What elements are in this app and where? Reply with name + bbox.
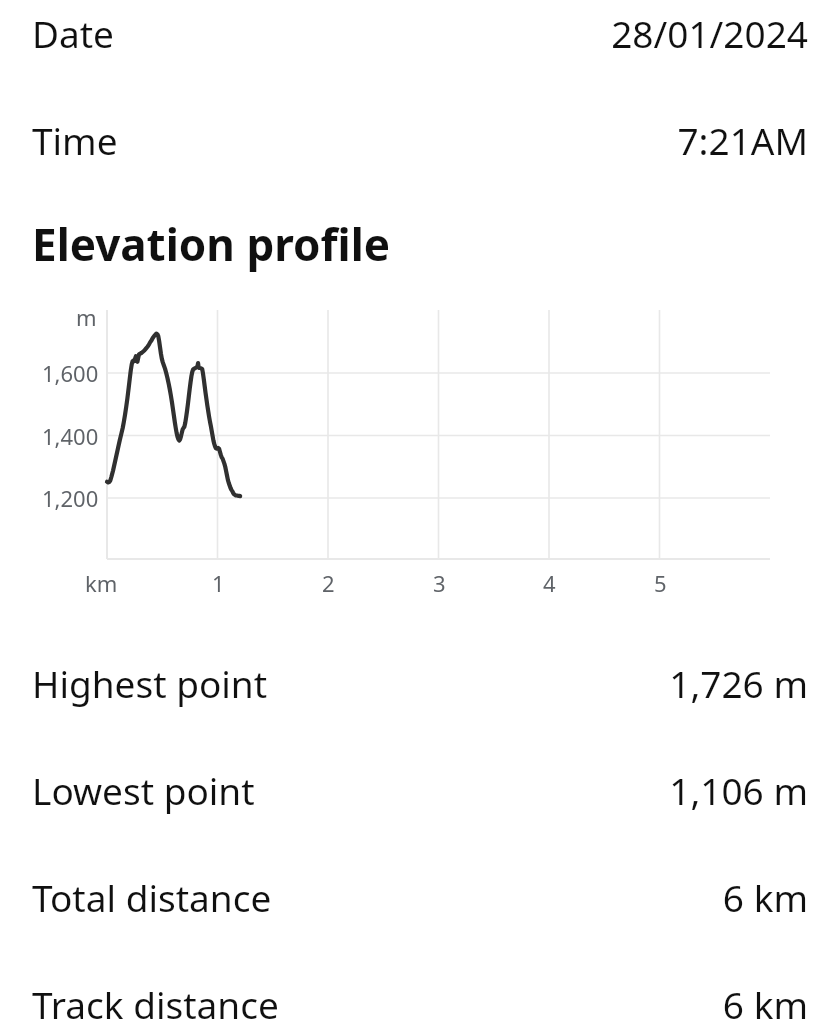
staticText: 3 — [433, 568, 446, 598]
staticText: 1,106 m — [669, 765, 808, 815]
staticText: 7:21AM — [677, 115, 808, 165]
staticText: Track distance — [32, 979, 279, 1024]
staticText: 5 — [654, 568, 667, 598]
staticText: 1,600 — [42, 358, 99, 388]
staticText: m — [76, 302, 97, 332]
staticText: Elevation profile — [32, 214, 391, 274]
staticText: 2 — [322, 568, 335, 598]
button[interactable]: Highest point — [0, 658, 840, 708]
staticText: 1,726 m — [669, 658, 808, 708]
staticText: 1,200 — [42, 483, 99, 513]
staticText: Date — [32, 8, 114, 58]
staticText: Highest point — [32, 658, 268, 708]
staticText: km — [85, 568, 118, 598]
staticText: 6 km — [722, 979, 808, 1024]
staticText: 1,400 — [42, 421, 99, 451]
staticText: Lowest point — [32, 765, 255, 815]
staticText: 1 — [212, 568, 225, 598]
staticText: 28/01/2024 — [611, 8, 808, 58]
staticText: Total distance — [32, 872, 272, 922]
staticText: 4 — [543, 568, 556, 598]
button[interactable]: Total distance — [0, 872, 840, 922]
staticText: Time — [32, 115, 118, 165]
staticText: 6 km — [722, 872, 808, 922]
button[interactable]: Track distance — [0, 979, 840, 1024]
button[interactable]: Lowest point — [0, 765, 840, 815]
button[interactable]: Date — [0, 8, 840, 58]
button[interactable]: Time — [0, 115, 840, 165]
